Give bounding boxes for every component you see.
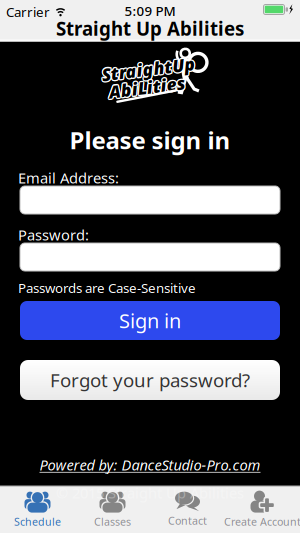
staticText: Contact bbox=[168, 514, 207, 528]
staticText: Powered by: DanceStudio-Pro.com bbox=[39, 455, 260, 474]
textField[interactable] bbox=[28, 185, 272, 215]
button[interactable]: Sign in bbox=[20, 301, 280, 340]
staticText: Schedule bbox=[14, 515, 61, 529]
staticText: 5:09 PM bbox=[124, 2, 175, 20]
staticText: Passwords are Case-Sensitive bbox=[18, 279, 196, 297]
staticText: Straight Up Abilities bbox=[56, 16, 244, 41]
staticText: StraightUp bbox=[104, 57, 198, 80]
secureTextField[interactable] bbox=[28, 242, 272, 272]
staticText: Please sign in bbox=[69, 124, 230, 156]
staticText: Password: bbox=[18, 225, 89, 244]
staticText: StraightUp bbox=[103, 58, 197, 81]
staticText: StraightUp bbox=[103, 56, 197, 79]
staticText: Email Address: bbox=[18, 168, 119, 187]
staticText: StraightUp bbox=[104, 58, 198, 81]
staticText: Classes bbox=[94, 515, 131, 529]
staticText: Create Account bbox=[224, 515, 300, 529]
staticText: AbiLities bbox=[108, 74, 185, 97]
staticText: AbiLities bbox=[108, 76, 185, 99]
staticText: AbiLities bbox=[107, 76, 184, 99]
staticText: StraightUp bbox=[103, 57, 197, 80]
staticText: AbiLities bbox=[107, 75, 184, 98]
staticText: Sign in bbox=[119, 307, 181, 334]
staticText: Carrier bbox=[6, 3, 50, 21]
staticText: AbiLities bbox=[107, 74, 184, 97]
staticText: AbiLities bbox=[108, 75, 185, 98]
staticText: AbiLities bbox=[109, 76, 186, 99]
staticText: © 2015 Straight Up Abilities bbox=[56, 483, 244, 502]
button[interactable]: Classes bbox=[75, 486, 150, 533]
staticText: AbiLities bbox=[109, 74, 186, 97]
button[interactable]: Create Account bbox=[225, 486, 300, 533]
button[interactable]: Contact bbox=[150, 486, 225, 533]
staticText: StraightUp bbox=[102, 57, 196, 80]
staticText: AbiLities bbox=[109, 75, 186, 98]
staticText: Forgot your password? bbox=[50, 368, 250, 392]
staticText: StraightUp bbox=[104, 56, 198, 79]
staticText: StraightUp bbox=[102, 58, 196, 81]
button[interactable]: Schedule bbox=[0, 486, 75, 533]
button[interactable]: Forgot your password? bbox=[20, 360, 280, 400]
button[interactable]: Powered by: DanceStudio-Pro.com bbox=[0, 455, 300, 474]
staticText: StraightUp bbox=[102, 56, 196, 79]
